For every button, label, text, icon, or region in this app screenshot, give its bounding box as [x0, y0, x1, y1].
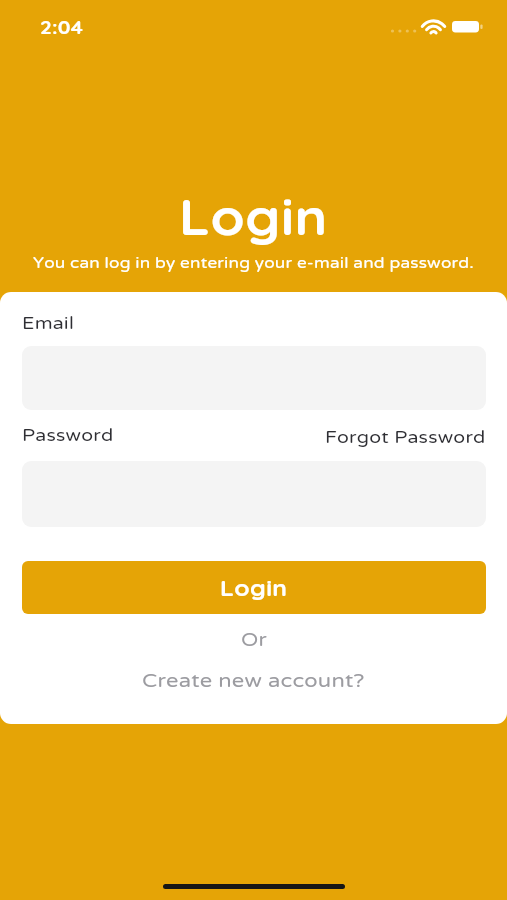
button[interactable]: Login: [22, 561, 486, 614]
staticText: Create new account?: [142, 669, 365, 693]
staticText: Or: [241, 629, 267, 652]
staticText: Forgot Password: [325, 427, 486, 448]
staticText: Login: [220, 574, 288, 602]
button[interactable]: Or: [0, 627, 507, 653]
staticText: 2:04: [40, 15, 84, 38]
staticText: Login: [179, 186, 328, 247]
button[interactable]: Forgot Password: [286, 423, 486, 451]
other: Wi-Fi: [422, 19, 445, 35]
staticText: You can log in by entering your e-mail a…: [33, 254, 474, 272]
other: Battery: [452, 21, 484, 33]
staticText: Password: [22, 425, 114, 446]
button[interactable]: Create new account?: [0, 665, 507, 697]
staticText: Email: [22, 313, 74, 334]
other: Cellular signal: [390, 26, 417, 36]
